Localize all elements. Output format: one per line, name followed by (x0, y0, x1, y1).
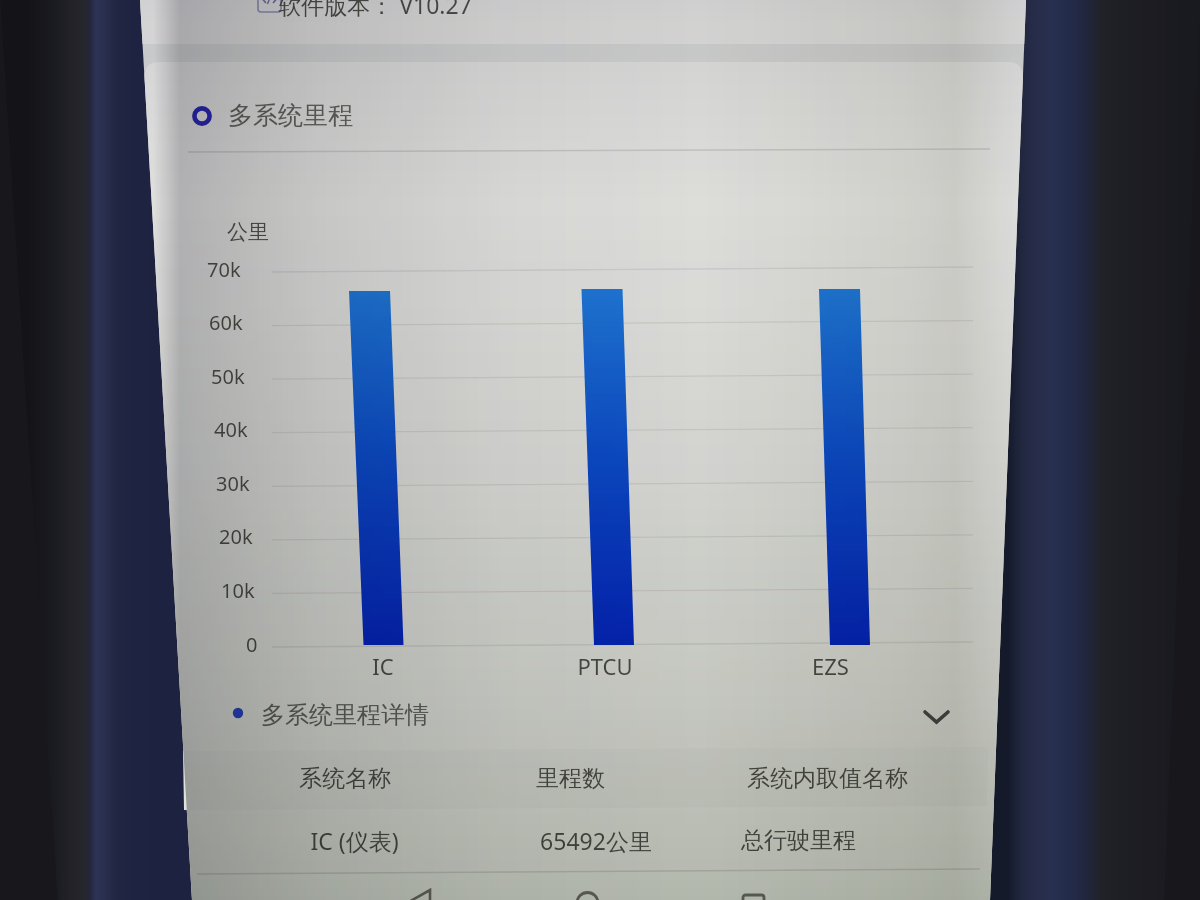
staticText: IC (372, 651, 394, 681)
staticText: 50k (211, 363, 245, 390)
staticText: 系统内取值名称 (747, 764, 908, 793)
button[interactable] (226, 694, 446, 740)
staticText: 0 (246, 631, 258, 658)
staticText: 40k (214, 416, 248, 443)
button[interactable]: Expand details (910, 696, 964, 740)
staticText: 65492公里 (540, 825, 652, 856)
staticText: 多系统里程详情 (261, 700, 429, 730)
staticText: 70k (207, 256, 241, 283)
staticText: 系统名称 (299, 764, 391, 793)
staticText: 10k (221, 577, 255, 604)
button[interactable]: Back (396, 878, 456, 900)
staticText: 软件版本： V10.27 (278, 0, 472, 20)
staticText: 60k (209, 309, 243, 336)
staticText: 30k (216, 470, 250, 497)
staticText: 里程数 (536, 764, 605, 793)
staticText: 多系统里程 (228, 100, 353, 131)
staticText: 公里 (227, 219, 269, 245)
staticText: PTCU (577, 651, 633, 681)
staticText: EZS (812, 651, 849, 681)
staticText: 20k (219, 523, 253, 550)
button[interactable] (186, 92, 506, 144)
button[interactable]: Recents (722, 878, 782, 900)
staticText: 总行驶里程 (741, 826, 856, 855)
button[interactable]: Home (560, 878, 620, 900)
staticText: IC (仪表) (310, 825, 399, 856)
